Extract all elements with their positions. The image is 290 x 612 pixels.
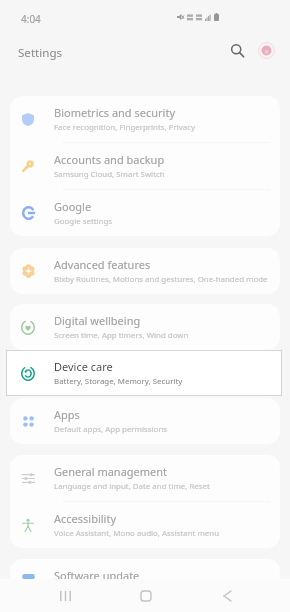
button[interactable]: Accessibility bbox=[10, 502, 280, 548]
staticText: Digital wellbeing bbox=[54, 313, 141, 328]
button[interactable]: Search bbox=[221, 34, 253, 66]
staticText: Accounts and backup bbox=[54, 152, 165, 167]
staticText: Google bbox=[54, 199, 92, 214]
staticText: General management bbox=[54, 464, 168, 479]
staticText: Apps bbox=[54, 407, 80, 422]
button[interactable]: General management bbox=[10, 455, 280, 501]
staticText: Battery, Storage, Memory, Security bbox=[54, 376, 183, 387]
staticText: Language and input, Date and time, Reset bbox=[54, 481, 210, 492]
button[interactable]: Home bbox=[126, 579, 166, 612]
staticText: Settings bbox=[18, 45, 63, 61]
staticText: Advanced features bbox=[54, 257, 151, 272]
staticText: Voice Assistant, Mono audio, Assistant m… bbox=[54, 528, 220, 539]
staticText: 4:04 bbox=[21, 12, 41, 26]
button[interactable]: Google bbox=[10, 190, 280, 236]
staticText: Bixby Routines, Motions and gestures, On… bbox=[54, 274, 268, 285]
button[interactable]: Device care bbox=[10, 351, 279, 395]
button[interactable]: Accounts and backup bbox=[10, 143, 280, 189]
staticText: Device care bbox=[54, 359, 113, 374]
button[interactable]: Apps bbox=[10, 398, 280, 444]
staticText: Accessibility bbox=[54, 511, 117, 526]
button[interactable]: Digital wellbeing bbox=[10, 304, 280, 350]
staticText: Face recognition, Fingerprints, Privacy bbox=[54, 122, 196, 133]
staticText: Google settings bbox=[54, 216, 113, 227]
button[interactable]: Profile bbox=[250, 34, 282, 66]
button[interactable]: Biometrics and security bbox=[10, 96, 280, 142]
staticText: Screen time, App timers, Wind down bbox=[54, 330, 189, 341]
staticText: Samsung Cloud, Smart Switch bbox=[54, 169, 165, 180]
button[interactable]: Recent apps bbox=[45, 579, 85, 612]
staticText: Biometrics and security bbox=[54, 105, 175, 120]
button[interactable]: Advanced features bbox=[10, 248, 280, 294]
staticText: Software update bbox=[54, 568, 140, 579]
button[interactable]: Back bbox=[207, 579, 247, 612]
staticText: Default apps, App permissions bbox=[54, 424, 168, 435]
button[interactable]: Software update bbox=[10, 559, 280, 579]
